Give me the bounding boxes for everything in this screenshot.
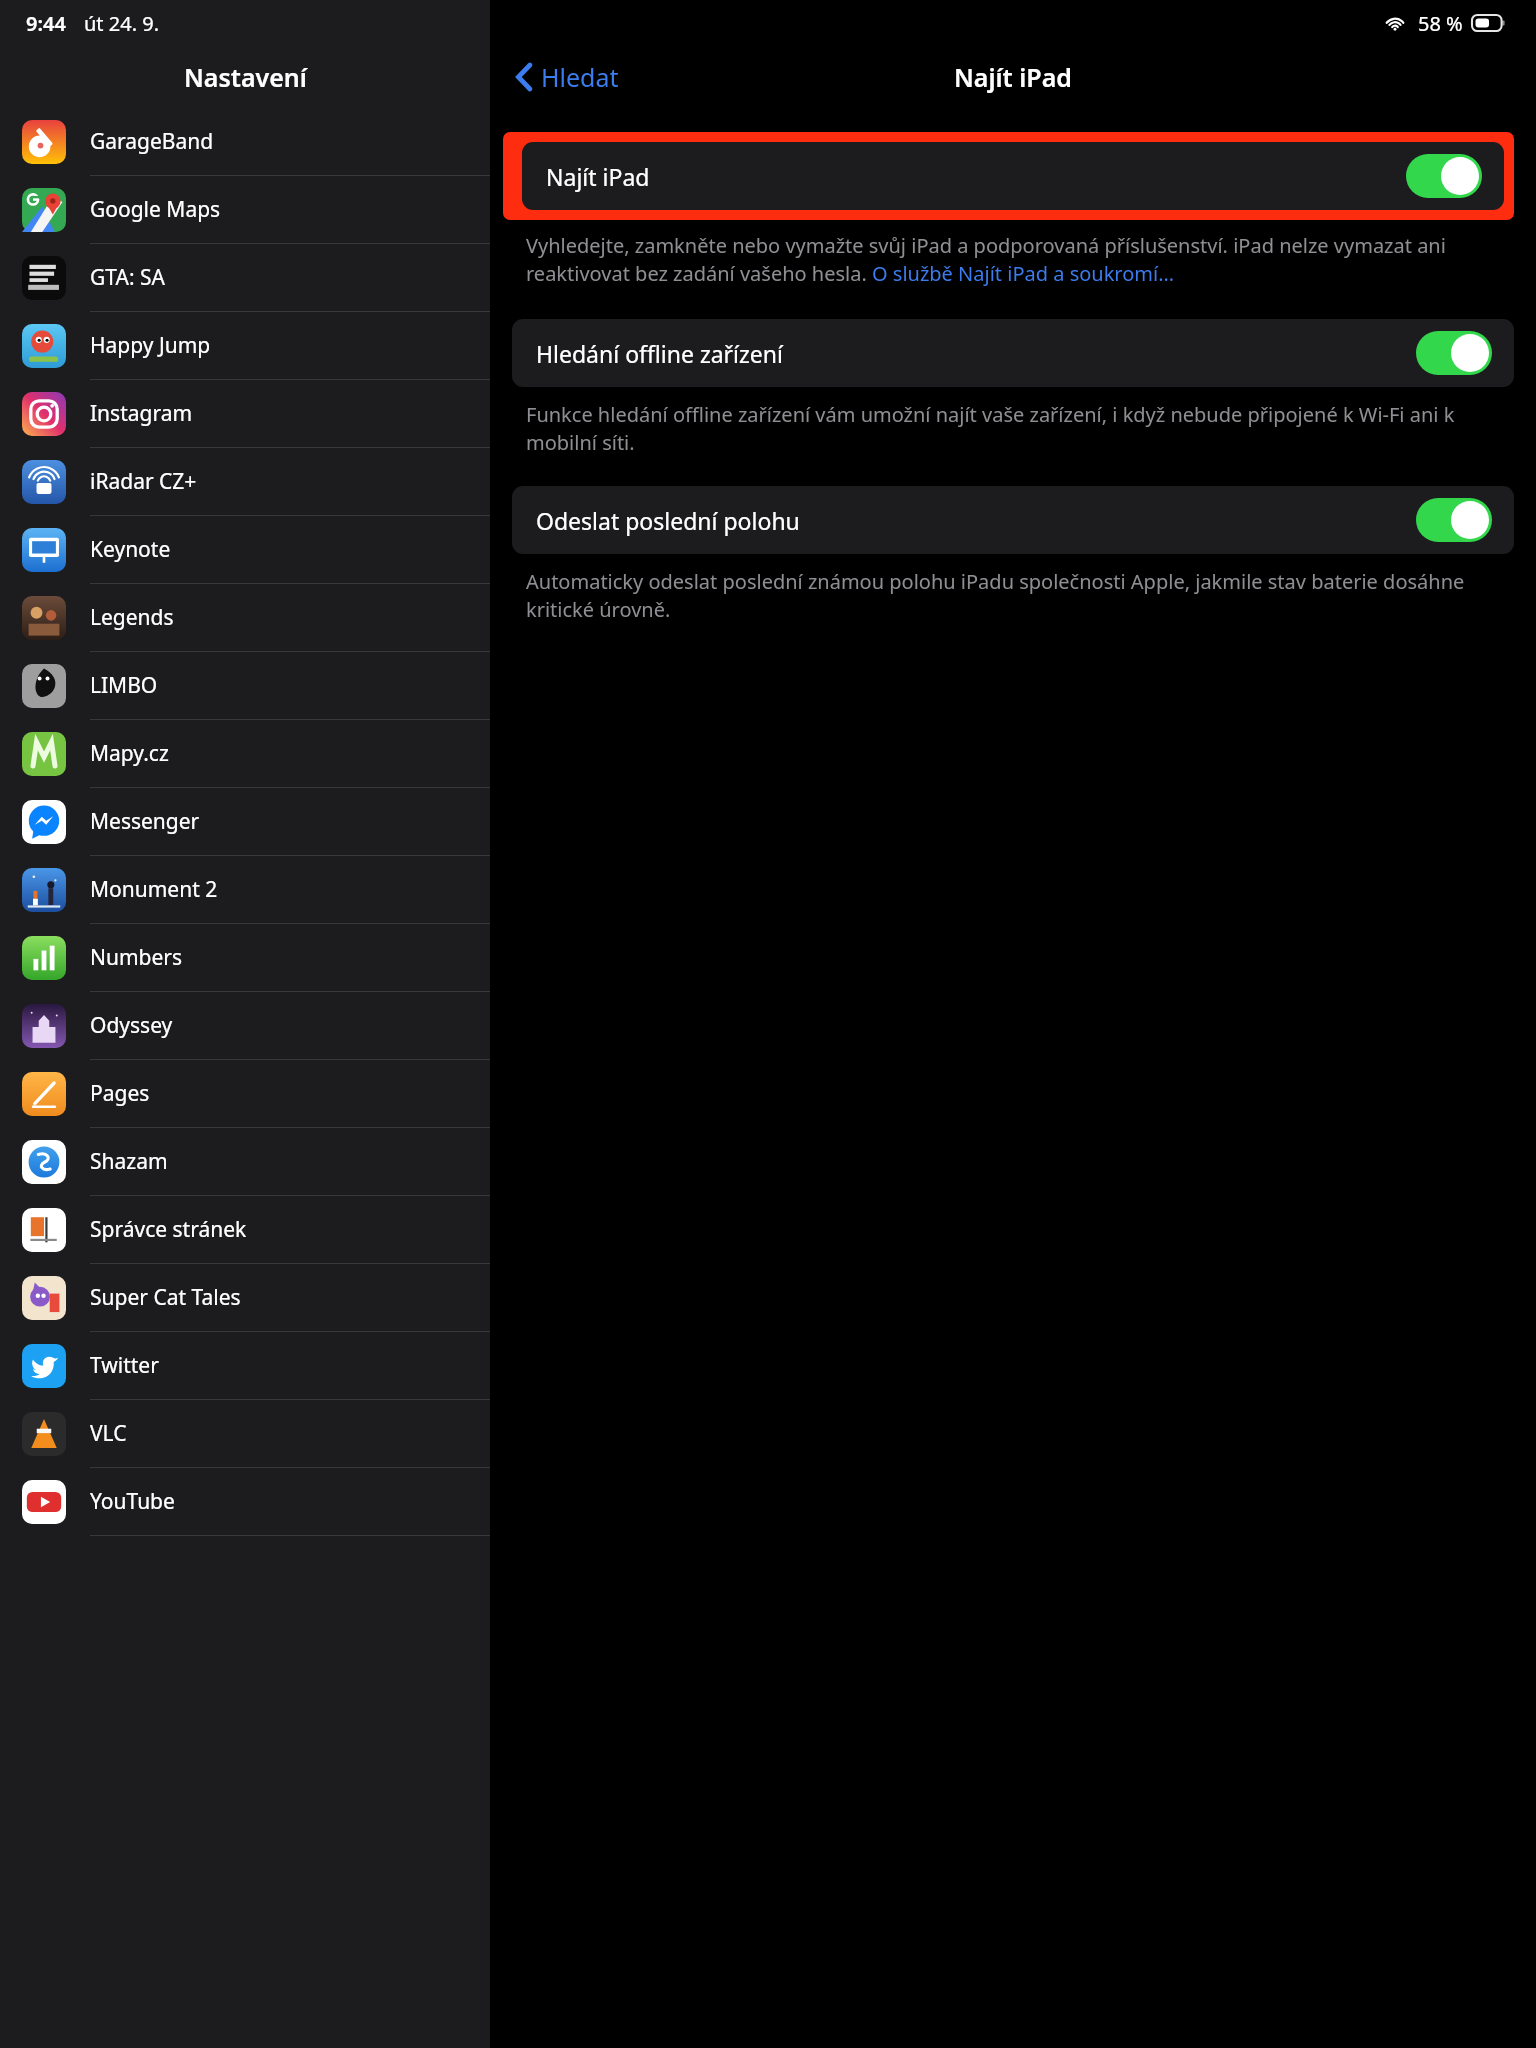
staticText: Numbers	[90, 943, 183, 972]
staticText: Vyhledejte, zamkněte nebo vymažte svůj i…	[526, 232, 1506, 287]
button[interactable]: Twitter	[0, 1332, 490, 1400]
button[interactable]: Hledání offline zařízení	[512, 319, 1514, 387]
staticText: Automaticky odeslat poslední známou polo…	[526, 568, 1492, 623]
staticText: Super Cat Tales	[90, 1283, 241, 1312]
staticText: Najít iPad	[546, 161, 1406, 192]
button[interactable]: Zapnuto	[1406, 154, 1482, 198]
staticText: Odyssey	[90, 1011, 173, 1040]
staticText: Messenger	[90, 807, 200, 836]
staticText: Keynote	[90, 535, 171, 564]
staticText: Happy Jump	[90, 331, 211, 360]
button[interactable]: Správce stránek	[0, 1196, 490, 1264]
staticText: LIMBO	[90, 671, 158, 700]
button[interactable]: Zapnuto	[1416, 331, 1492, 375]
button[interactable]: Mapy.cz	[0, 720, 490, 788]
staticText: Hledání offline zařízení	[536, 338, 1416, 369]
button[interactable]: Zapnuto	[1416, 498, 1492, 542]
button[interactable]: GTA: SA	[0, 244, 490, 312]
button[interactable]: Hledat	[510, 54, 625, 100]
staticText: YouTube	[90, 1487, 175, 1516]
button[interactable]: Super Cat Tales	[0, 1264, 490, 1332]
staticText: Shazam	[90, 1147, 168, 1176]
button[interactable]: Odeslat poslední polohu	[512, 486, 1514, 554]
staticText: Odeslat poslední polohu	[536, 505, 1416, 536]
staticText: Twitter	[90, 1351, 159, 1380]
staticText: Legends	[90, 603, 174, 632]
staticText: Najít iPad	[954, 60, 1072, 94]
button[interactable]: VLC	[0, 1400, 490, 1468]
staticText: út 24. 9.	[84, 10, 160, 37]
staticText: Google Maps	[90, 195, 221, 224]
button[interactable]: YouTube	[0, 1468, 490, 1536]
button[interactable]: Shazam	[0, 1128, 490, 1196]
staticText: Správce stránek	[90, 1215, 247, 1244]
button[interactable]: Numbers	[0, 924, 490, 992]
staticText: Mapy.cz	[90, 739, 169, 768]
staticText: GTA: SA	[90, 263, 165, 292]
staticText: Monument 2	[90, 875, 218, 904]
button[interactable]: LIMBO	[0, 652, 490, 720]
button[interactable]: Messenger	[0, 788, 490, 856]
button[interactable]: Najít iPad	[522, 142, 1504, 210]
staticText: iRadar CZ+	[90, 467, 197, 496]
button[interactable]: Keynote	[0, 516, 490, 584]
button[interactable]: iRadar CZ+	[0, 448, 490, 516]
button[interactable]: Pages	[0, 1060, 490, 1128]
staticText: Nastavení	[184, 60, 307, 94]
button[interactable]: Odyssey	[0, 992, 490, 1060]
staticText: 9:44	[26, 10, 66, 37]
button[interactable]: Instagram	[0, 380, 490, 448]
button[interactable]: Google Maps	[0, 176, 490, 244]
staticText: Funkce hledání offline zařízení vám umož…	[526, 401, 1496, 456]
button[interactable]: GarageBand	[0, 108, 490, 176]
staticText: Instagram	[90, 399, 193, 428]
staticText: 58 %	[1418, 10, 1463, 37]
button[interactable]: Happy Jump	[0, 312, 490, 380]
button[interactable]: Legends	[0, 584, 490, 652]
button[interactable]: Monument 2	[0, 856, 490, 924]
staticText: Hledat	[541, 60, 619, 94]
staticText: Pages	[90, 1079, 150, 1108]
staticText: GarageBand	[90, 127, 214, 156]
staticText: VLC	[90, 1419, 127, 1448]
